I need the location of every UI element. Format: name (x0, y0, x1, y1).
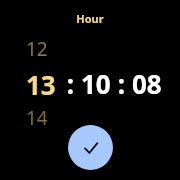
staticText: 08 (132, 66, 162, 101)
button[interactable]: Hour picker (26, 36, 60, 131)
button[interactable]: Second picker (132, 66, 162, 101)
button[interactable]: Confirm (68, 125, 113, 170)
staticText: : (111, 66, 132, 101)
staticText: : (60, 66, 81, 101)
staticText: 14 (26, 105, 48, 131)
staticText: 12 (26, 36, 48, 62)
staticText: 10 (81, 66, 111, 101)
button[interactable]: Minute picker (81, 66, 111, 101)
staticText: 13 (26, 67, 56, 102)
staticText: Hour (76, 11, 104, 26)
